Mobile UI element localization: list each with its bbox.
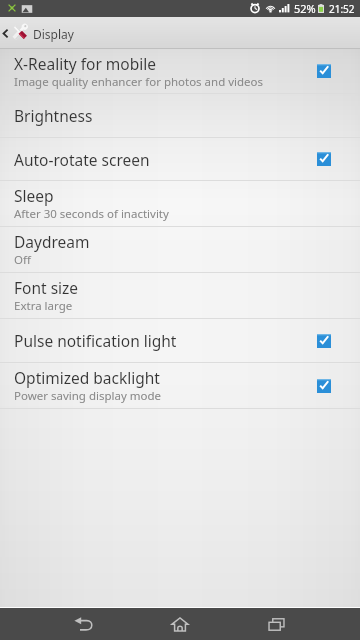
staticText: 21:52 — [329, 2, 355, 16]
staticText: 52% — [294, 1, 316, 16]
staticText: Image quality enhancer for photos and vi… — [14, 74, 264, 90]
button[interactable]: Pulse notification light — [0, 319, 360, 362]
staticText: Brightness — [14, 105, 93, 126]
button[interactable]: Optimized backlight — [309, 371, 339, 401]
button[interactable]: Recent apps — [228, 608, 324, 640]
button[interactable]: Navigate up — [0, 17, 11, 49]
button[interactable]: Auto-rotate screen — [309, 144, 339, 174]
staticText: X-Reality for mobile — [14, 53, 156, 74]
staticText: Power saving display mode — [14, 388, 162, 404]
staticText: Auto-rotate screen — [14, 149, 150, 170]
staticText: Display — [33, 26, 74, 42]
button[interactable]: Back — [36, 608, 132, 640]
button[interactable]: Pulse notification light — [309, 326, 339, 356]
staticText: After 30 seconds of inactivity — [14, 206, 169, 222]
staticText: Optimized backlight — [14, 367, 160, 388]
staticText: Sleep — [14, 185, 54, 206]
button[interactable]: X-Reality for mobile — [0, 49, 360, 93]
staticText: Pulse notification light — [14, 330, 177, 351]
button[interactable]: Home — [132, 608, 228, 640]
staticText: Off — [14, 252, 31, 268]
button[interactable]: Font size — [0, 273, 360, 318]
staticText: Font size — [14, 277, 79, 298]
button[interactable]: Sleep — [0, 181, 360, 226]
staticText: Extra large — [14, 298, 73, 314]
button[interactable]: Optimized backlight — [0, 363, 360, 408]
button[interactable]: Daydream — [0, 227, 360, 272]
staticText: Daydream — [14, 231, 90, 252]
button[interactable]: Brightness — [0, 94, 360, 137]
button[interactable]: X-Reality for mobile — [309, 56, 339, 86]
button[interactable]: Auto-rotate screen — [0, 138, 360, 180]
